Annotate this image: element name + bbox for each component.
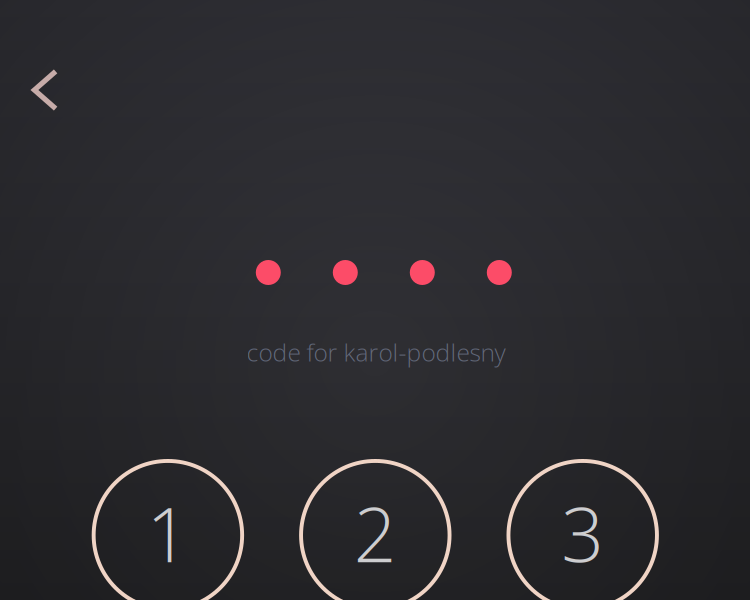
- button[interactable]: 3: [506, 459, 659, 600]
- button[interactable]: Back: [2, 47, 88, 133]
- staticText: 1: [146, 482, 189, 584]
- staticText: 2: [354, 482, 397, 584]
- staticText: 3: [561, 482, 604, 584]
- staticText: code for karol-podlesny: [246, 335, 505, 369]
- button[interactable]: 2: [299, 459, 451, 600]
- button[interactable]: 1: [92, 459, 244, 600]
